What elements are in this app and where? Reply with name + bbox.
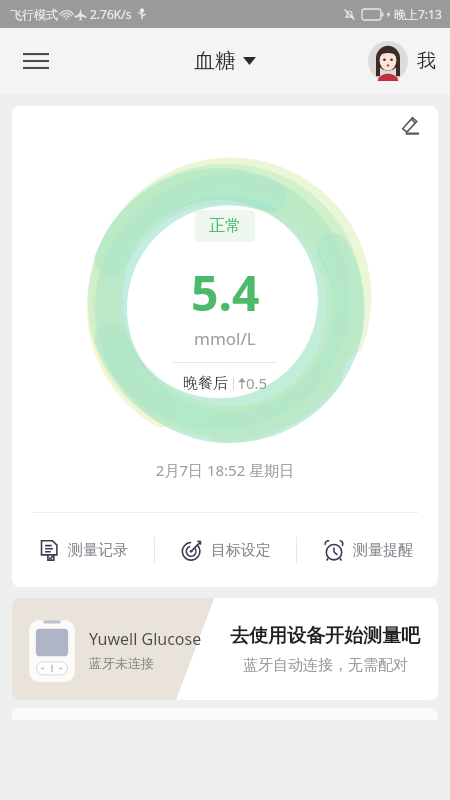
staticText: 我 bbox=[417, 49, 436, 73]
staticText: 晚餐后 bbox=[183, 374, 228, 393]
staticText: 去使用设备开始测量吧 bbox=[230, 624, 420, 648]
staticText: 目标设定 bbox=[211, 541, 271, 560]
staticText: 2月7日 18:52 星期日 bbox=[12, 460, 438, 480]
button[interactable]: 测量记录 bbox=[12, 513, 154, 587]
button[interactable]: 目标设定 bbox=[155, 513, 296, 587]
staticText: mmol/L bbox=[194, 327, 256, 350]
staticText: 血糖 bbox=[194, 48, 236, 74]
button[interactable]: Menu bbox=[14, 39, 58, 83]
button[interactable]: Edit bbox=[392, 107, 426, 141]
button[interactable]: Yuwell Glucose bbox=[12, 598, 438, 700]
staticText: 测量提醒 bbox=[353, 541, 413, 560]
staticText: 2.76K/s bbox=[90, 6, 132, 22]
staticText: 飞行模式 bbox=[10, 7, 58, 22]
staticText: 测量记录 bbox=[68, 541, 128, 560]
staticText: 蓝牙未连接 bbox=[89, 655, 154, 671]
button[interactable]: 血糖 bbox=[194, 48, 256, 74]
staticText: 5.4 bbox=[191, 260, 260, 325]
staticText: 正常 bbox=[209, 216, 241, 236]
staticText: 晚上7:13 bbox=[394, 6, 442, 22]
button[interactable]: 测量提醒 bbox=[297, 513, 438, 587]
staticText: Yuwell Glucose bbox=[89, 628, 202, 650]
staticText: 0.5 bbox=[246, 373, 268, 393]
staticText: 蓝牙自动连接，无需配对 bbox=[243, 656, 408, 675]
button[interactable]: 我 bbox=[368, 41, 436, 81]
